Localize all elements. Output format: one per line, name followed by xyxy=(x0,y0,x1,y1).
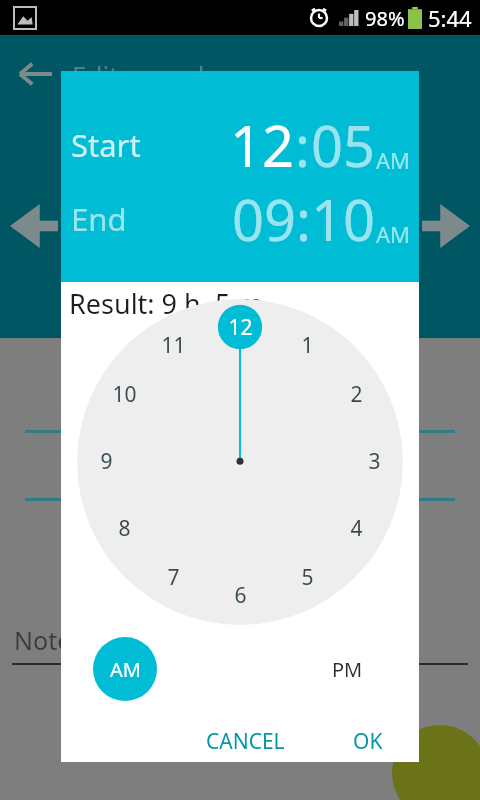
button[interactable]: 6 xyxy=(218,577,262,613)
staticText: 1 xyxy=(301,331,314,360)
staticText: 6 xyxy=(234,581,247,610)
button[interactable]: AM xyxy=(93,637,157,701)
staticText: 5 xyxy=(301,563,314,592)
button[interactable]: 2 xyxy=(334,376,378,412)
button[interactable]: 8 xyxy=(102,510,146,546)
button[interactable]: 09:10 xyxy=(232,181,376,257)
button[interactable]: Add xyxy=(392,725,480,800)
button[interactable]: 12 xyxy=(230,107,295,183)
button[interactable]: OK xyxy=(341,719,395,762)
staticText: AM xyxy=(376,219,411,249)
staticText: Start xyxy=(71,124,141,166)
button[interactable]: PM xyxy=(324,648,371,691)
staticText: PM xyxy=(332,656,363,683)
button[interactable]: 1 xyxy=(285,327,329,363)
button[interactable]: 5 xyxy=(285,559,329,595)
staticText: 8 xyxy=(118,514,131,543)
staticText: : xyxy=(295,107,311,183)
staticText: Result: 9 h. 5 m. xyxy=(69,285,270,322)
staticText: 12 xyxy=(228,313,253,342)
staticText: 9 xyxy=(100,447,113,476)
button[interactable]: CANCEL xyxy=(194,719,297,762)
button[interactable]: 4 xyxy=(334,510,378,546)
staticText: OK xyxy=(353,727,383,754)
staticText: AM xyxy=(110,656,141,683)
staticText: 10 xyxy=(112,380,137,409)
button[interactable]: 12 xyxy=(218,309,262,345)
staticText: 3 xyxy=(368,447,381,476)
button[interactable]: Back xyxy=(18,57,52,91)
staticText: Edit record xyxy=(72,57,205,92)
staticText: 11 xyxy=(161,331,186,360)
button[interactable]: 05 xyxy=(311,107,376,183)
staticText: 7 xyxy=(167,563,180,592)
staticText: AM xyxy=(376,145,411,175)
button[interactable]: 11 xyxy=(151,327,195,363)
staticText: 5:44 xyxy=(428,3,472,33)
button[interactable]: 9 xyxy=(84,443,128,479)
button[interactable]: 3 xyxy=(352,443,396,479)
staticText: CANCEL xyxy=(206,727,285,754)
staticText: Note xyxy=(14,623,72,657)
staticText: 2 xyxy=(350,380,363,409)
staticText: 98% xyxy=(365,5,405,32)
button[interactable]: 10 xyxy=(102,376,146,412)
staticText: 4 xyxy=(350,514,363,543)
staticText: End xyxy=(71,198,127,240)
button[interactable]: 7 xyxy=(151,559,195,595)
